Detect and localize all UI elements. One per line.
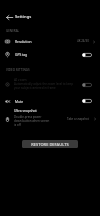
staticText: Double-press power bbox=[14, 115, 42, 119]
staticText: is off bbox=[14, 123, 21, 127]
staticText: AI zoom bbox=[14, 77, 27, 81]
staticText: 4K 24/30 bbox=[77, 39, 89, 43]
staticText: Automatically adjust the zoom level to k… bbox=[14, 82, 73, 86]
staticText: VIDEO SETTINGS bbox=[6, 68, 30, 72]
button[interactable]: Toggle bbox=[82, 99, 92, 103]
button[interactable] bbox=[0, 36, 100, 48]
button[interactable]: Toggle bbox=[82, 53, 92, 57]
staticText: your subject centered in frame bbox=[14, 86, 56, 90]
staticText: Mute bbox=[15, 99, 24, 103]
staticText: RESTORE DEFAULTS bbox=[31, 142, 69, 147]
button[interactable]: RESTORE DEFAULTS bbox=[22, 140, 78, 148]
button[interactable] bbox=[0, 75, 100, 94]
staticText: Resolution bbox=[15, 39, 32, 43]
button[interactable] bbox=[0, 96, 100, 108]
button[interactable] bbox=[0, 49, 100, 61]
staticText: GENERAL bbox=[6, 29, 20, 33]
button[interactable]: Toggle bbox=[82, 83, 92, 87]
staticText: Ultra snapshot bbox=[14, 108, 37, 112]
button[interactable] bbox=[0, 106, 100, 130]
button[interactable]: Back bbox=[3, 11, 15, 23]
staticText: GPS tag bbox=[15, 52, 28, 56]
staticText: down button when screen bbox=[14, 119, 50, 123]
staticText: Take a snapshot bbox=[67, 117, 89, 121]
staticText: Settings bbox=[15, 14, 32, 20]
